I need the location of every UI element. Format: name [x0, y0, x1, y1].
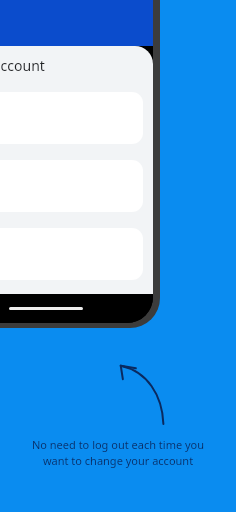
other: Arrow pointing to the account switcher: [114, 360, 166, 424]
staticText: No need to log out each time you want to…: [22, 437, 214, 468]
staticText: Your account: [0, 56, 45, 75]
